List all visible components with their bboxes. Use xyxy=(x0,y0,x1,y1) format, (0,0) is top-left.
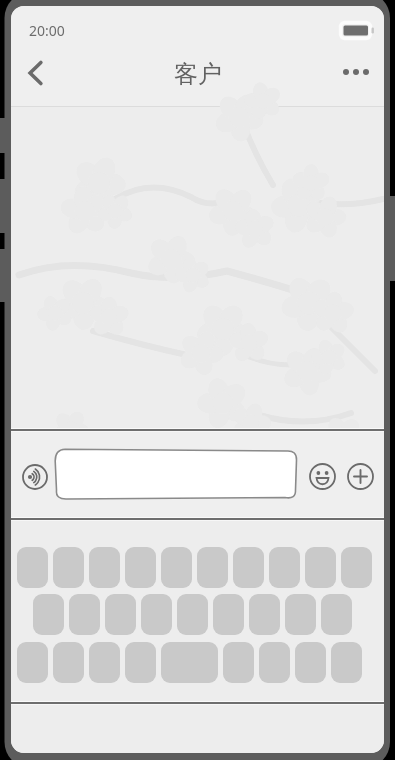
button[interactable] xyxy=(33,594,64,635)
button[interactable] xyxy=(321,594,352,635)
button[interactable] xyxy=(249,594,280,635)
button[interactable] xyxy=(54,448,298,501)
button[interactable] xyxy=(233,547,264,588)
button[interactable] xyxy=(69,594,100,635)
button[interactable] xyxy=(161,547,192,588)
button[interactable] xyxy=(331,642,362,683)
button[interactable] xyxy=(89,642,120,683)
button[interactable] xyxy=(125,642,156,683)
button[interactable] xyxy=(141,594,172,635)
staticText: 20:00 xyxy=(29,21,65,40)
staticText: 客户 xyxy=(174,59,222,89)
button[interactable] xyxy=(89,547,120,588)
button[interactable] xyxy=(17,547,48,588)
button[interactable] xyxy=(105,594,136,635)
button[interactable] xyxy=(305,547,336,588)
button[interactable] xyxy=(53,642,84,683)
button[interactable]: Add xyxy=(340,456,380,496)
button[interactable] xyxy=(285,594,316,635)
button[interactable] xyxy=(17,642,48,683)
button[interactable] xyxy=(295,642,326,683)
button[interactable] xyxy=(341,547,372,588)
button[interactable]: Back xyxy=(14,42,62,103)
button[interactable] xyxy=(213,594,244,635)
button[interactable]: Emoji xyxy=(302,456,342,496)
button[interactable]: Voice message xyxy=(15,457,55,497)
button[interactable] xyxy=(197,547,228,588)
button[interactable] xyxy=(259,642,290,683)
button[interactable] xyxy=(269,547,300,588)
button[interactable]: More options xyxy=(329,41,381,102)
button[interactable] xyxy=(53,547,84,588)
button[interactable] xyxy=(125,547,156,588)
button[interactable] xyxy=(161,642,218,683)
button[interactable] xyxy=(177,594,208,635)
button[interactable] xyxy=(223,642,254,683)
